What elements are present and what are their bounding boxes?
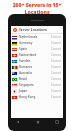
other: Spain <box>12 48 17 51</box>
button[interactable]: Back <box>14 119 21 124</box>
other: Hong Kong <box>12 96 17 99</box>
button[interactable]: Recent apps <box>53 119 60 124</box>
button[interactable]: Australia <box>11 70 63 76</box>
button[interactable]: Germany <box>11 40 63 46</box>
other: Sweden <box>12 60 17 63</box>
other: App logo <box>13 28 17 32</box>
staticText: Hong Kong <box>19 95 51 99</box>
staticText: Connect <box>51 95 62 99</box>
other: Germany <box>12 42 17 45</box>
button[interactable]: Romania <box>11 64 63 70</box>
staticText: Germany <box>19 41 51 45</box>
staticText: Connect <box>51 59 62 63</box>
staticText: Japan <box>19 89 51 93</box>
other: Netherlands <box>12 36 17 39</box>
staticText: 200+ Servers in 15+ Locations <box>0 1 74 14</box>
staticText: Connect <box>51 35 62 39</box>
staticText: Romania <box>19 65 51 69</box>
staticText: Brazil <box>19 77 51 81</box>
staticText: Switzerland <box>19 53 51 57</box>
staticText: Spain <box>19 47 51 51</box>
staticText: Singapore <box>19 83 51 87</box>
other: Romania <box>12 66 17 69</box>
button[interactable]: App logo <box>11 26 63 33</box>
button[interactable]: Switzerland <box>11 52 63 58</box>
staticText: Connect <box>51 77 62 81</box>
staticText: Netherlands <box>19 35 51 39</box>
button[interactable]: Hong Kong <box>11 94 63 100</box>
staticText: Connect <box>51 65 62 69</box>
staticText: Sweden <box>19 59 51 63</box>
other: Japan <box>12 90 17 93</box>
button[interactable]: Home <box>34 119 41 124</box>
button[interactable]: Brazil <box>11 76 63 82</box>
staticText: Connect <box>51 71 62 75</box>
other: Australia <box>12 72 17 75</box>
other: Switzerland <box>12 54 17 57</box>
staticText: Australia <box>19 71 51 75</box>
button[interactable]: Spain <box>11 46 63 52</box>
staticText: Connect <box>51 83 62 87</box>
other: Singapore <box>12 84 17 87</box>
button[interactable]: Sweden <box>11 58 63 64</box>
staticText: Connect <box>51 41 62 45</box>
staticText: Connect <box>51 89 62 93</box>
button[interactable]: Singapore <box>11 82 63 88</box>
button[interactable]: Japan <box>11 88 63 94</box>
staticText: Server Locations <box>19 27 48 32</box>
other: Brazil <box>12 78 17 81</box>
staticText: Connect <box>51 53 62 57</box>
staticText: Connect <box>51 47 62 51</box>
button[interactable]: Netherlands <box>11 34 63 40</box>
